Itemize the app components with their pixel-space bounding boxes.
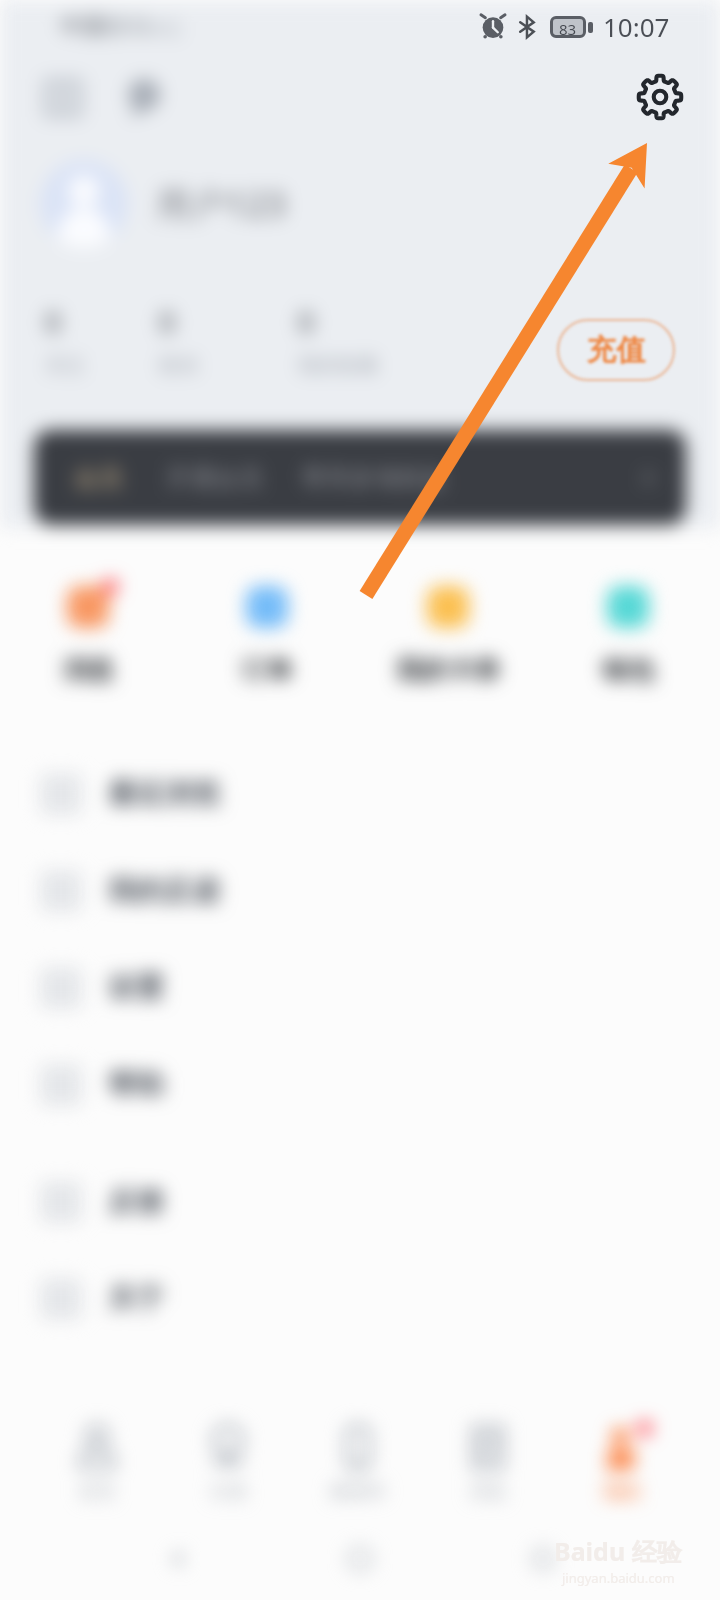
button[interactable]: 会员 [34, 430, 686, 525]
button[interactable]: 购物车 [296, 1420, 420, 1504]
staticText: 反馈 [108, 1184, 164, 1219]
staticText: 最近浏览 [108, 776, 220, 811]
button[interactable]: 我的卡券 [379, 586, 517, 687]
staticText: 用户123 [156, 180, 287, 228]
button[interactable]: 消息 [426, 1420, 550, 1504]
button[interactable]: 关于 [0, 1250, 720, 1347]
staticText: 订单 [241, 654, 293, 687]
button[interactable]: Customer service [124, 77, 166, 119]
staticText: 我的足迹 [108, 873, 220, 908]
staticText: 10:07 [603, 9, 670, 44]
staticText: 0 [159, 303, 176, 341]
staticText: 4G [152, 12, 182, 43]
staticText: 我的收藏 [298, 353, 378, 378]
staticText: 会员 [74, 463, 122, 493]
button[interactable]: 订单 [198, 586, 336, 687]
button[interactable]: 用户123 [0, 157, 720, 251]
staticText: 充值 [587, 332, 645, 369]
staticText: Baidu 经验 [554, 1534, 682, 1568]
staticText: 帮助 [108, 1067, 164, 1102]
button[interactable]: Recents [513, 1529, 573, 1589]
staticText: 尊享多项权益 [302, 463, 446, 493]
staticText: 关于 [108, 1281, 164, 1316]
button[interactable]: 充值 [557, 319, 675, 381]
staticText: 设置 [108, 970, 164, 1005]
staticText: 我的 [603, 1480, 641, 1504]
button[interactable]: Settings [635, 72, 685, 122]
staticText: 中国 [60, 12, 106, 41]
button[interactable]: 消息 [19, 586, 157, 687]
button[interactable]: 最近浏览 [0, 745, 720, 842]
staticText: 0 [298, 303, 315, 341]
button[interactable]: 0 [45, 303, 145, 378]
staticText: jingyan.baidu.com [562, 1569, 675, 1587]
staticText: 消息 [62, 654, 114, 687]
button[interactable]: 分类 [166, 1420, 290, 1504]
staticText: 消息 [469, 1480, 507, 1504]
staticText: 0 [45, 303, 62, 341]
staticText: 我的卡券 [396, 654, 500, 687]
button[interactable]: 帮助 [0, 1036, 720, 1133]
staticText: 开通会员 [166, 463, 262, 493]
staticText: 购物车 [330, 1480, 387, 1504]
button[interactable]: 设置 [0, 939, 720, 1036]
button[interactable]: 我的 [560, 1420, 684, 1504]
button[interactable]: 我的足迹 [0, 842, 720, 939]
button[interactable]: 反馈 [0, 1153, 720, 1250]
button[interactable]: 钱包 [559, 586, 697, 687]
staticText: 移动 [106, 12, 152, 41]
button[interactable]: 0 [159, 303, 259, 378]
button[interactable]: Home [330, 1529, 390, 1589]
button[interactable]: 首页 [35, 1420, 159, 1504]
staticText: 83 [559, 19, 577, 35]
button[interactable]: 0 [298, 303, 418, 378]
button[interactable]: Scan QR code [42, 77, 84, 119]
staticText: 钱包 [602, 654, 654, 687]
